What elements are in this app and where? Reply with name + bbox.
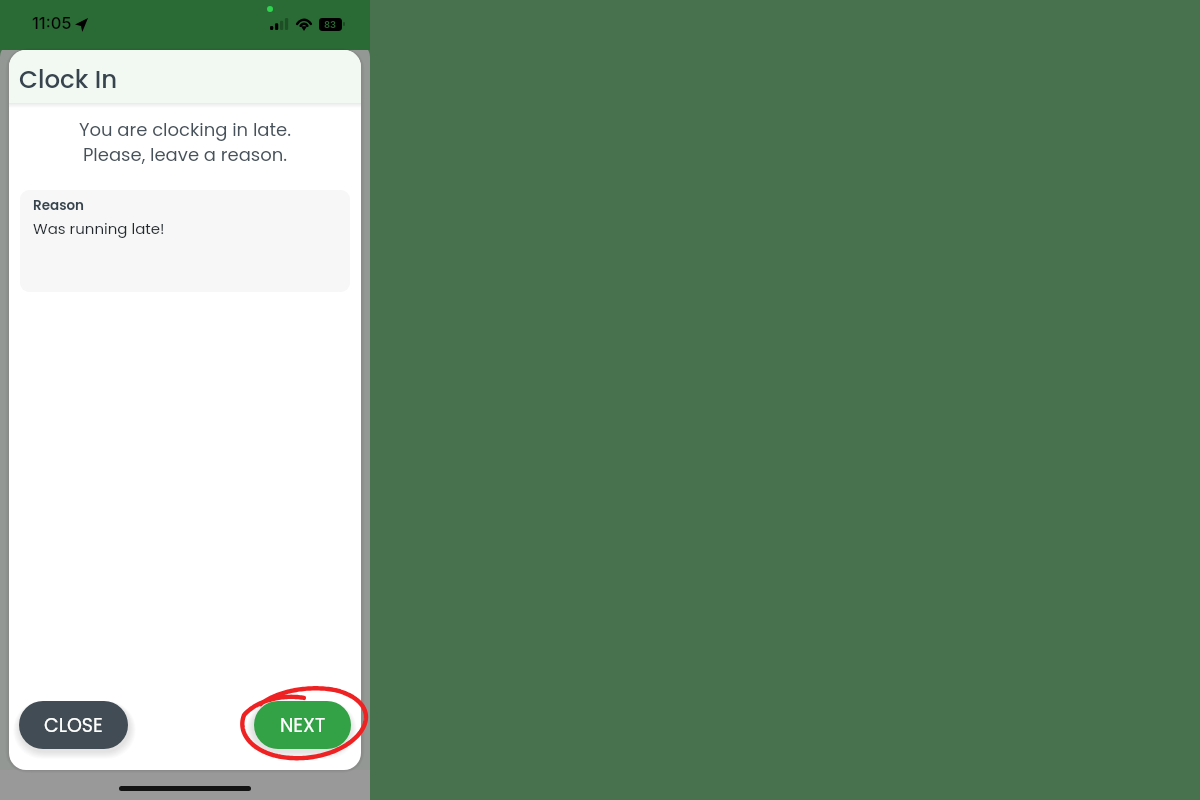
- other: Home indicator: [119, 786, 251, 791]
- other: Battery 83 percent: [319, 18, 342, 31]
- button[interactable]: Reason: [20, 190, 350, 292]
- staticText: Reason: [33, 196, 85, 215]
- other: Wi-Fi: [296, 18, 312, 30]
- staticText: NEXT: [280, 712, 326, 739]
- other: Location in use: [75, 18, 88, 32]
- staticText: You are clocking in late. Please, leave …: [9, 117, 361, 168]
- staticText: 83: [324, 19, 337, 30]
- button[interactable]: CLOSE: [19, 701, 128, 749]
- staticText: Clock In: [19, 62, 118, 96]
- button[interactable]: NEXT: [254, 701, 351, 749]
- staticText: 11:05: [32, 13, 72, 33]
- staticText: CLOSE: [44, 712, 103, 739]
- other: Cellular signal: [270, 18, 289, 30]
- staticText: Was running late!: [33, 218, 165, 239]
